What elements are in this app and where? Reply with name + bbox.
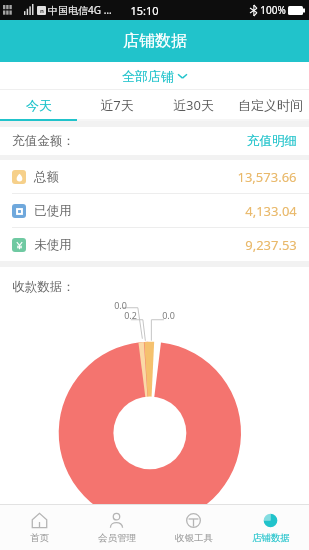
other: 收款数据饼图 bbox=[0, 267, 309, 504]
staticText: 全部店铺 bbox=[122, 68, 174, 84]
staticText: 0.0 bbox=[114, 299, 127, 311]
button[interactable]: 近30天 bbox=[155, 90, 232, 119]
staticText: 中国电信4G bbox=[48, 3, 101, 17]
staticText: 4,133.04 bbox=[245, 202, 297, 220]
button[interactable]: 充值明细 bbox=[247, 133, 297, 149]
staticText: 13,573.66 bbox=[237, 168, 297, 186]
button[interactable]: 总额 bbox=[0, 160, 309, 193]
staticText: 首页 bbox=[30, 532, 49, 544]
staticText: 自定义时间 bbox=[238, 97, 303, 113]
button[interactable]: 今天 bbox=[0, 90, 78, 119]
staticText: 充值金额： bbox=[12, 133, 75, 149]
staticText: 9,237.53 bbox=[245, 236, 297, 254]
button[interactable]: 店铺数据 bbox=[232, 505, 309, 550]
staticText: n bbox=[40, 7, 44, 15]
staticText: 收银工具 bbox=[175, 532, 213, 544]
staticText: 未使用 bbox=[34, 237, 72, 253]
staticText: 近7天 bbox=[100, 96, 134, 114]
button[interactable]: 自定义时间 bbox=[232, 90, 309, 119]
staticText: 店铺数据 bbox=[252, 532, 290, 544]
staticText: 近30天 bbox=[173, 96, 214, 114]
staticText: 收款数据： bbox=[12, 279, 75, 295]
staticText: 今天 bbox=[26, 97, 52, 113]
button[interactable]: 会员管理 bbox=[78, 505, 155, 550]
staticText: 0.2 bbox=[124, 309, 137, 321]
staticText: 已使用 bbox=[34, 203, 72, 219]
button[interactable]: 未使用 bbox=[0, 228, 309, 261]
button[interactable]: 收银工具 bbox=[155, 505, 232, 550]
button[interactable]: 全部店铺 bbox=[0, 62, 309, 89]
staticText: 总额 bbox=[34, 169, 59, 185]
staticText: 会员管理 bbox=[98, 532, 136, 544]
staticText: 100% bbox=[260, 3, 286, 17]
staticText: 店铺数据 bbox=[123, 31, 187, 51]
staticText: 15:10 bbox=[130, 3, 159, 18]
staticText: 0.0 bbox=[162, 309, 175, 321]
button[interactable]: 近7天 bbox=[78, 90, 155, 119]
staticText: … bbox=[101, 3, 112, 17]
staticText: 充值明细 bbox=[247, 133, 297, 149]
button[interactable]: 首页 bbox=[0, 505, 78, 550]
button[interactable]: 已使用 bbox=[0, 194, 309, 227]
